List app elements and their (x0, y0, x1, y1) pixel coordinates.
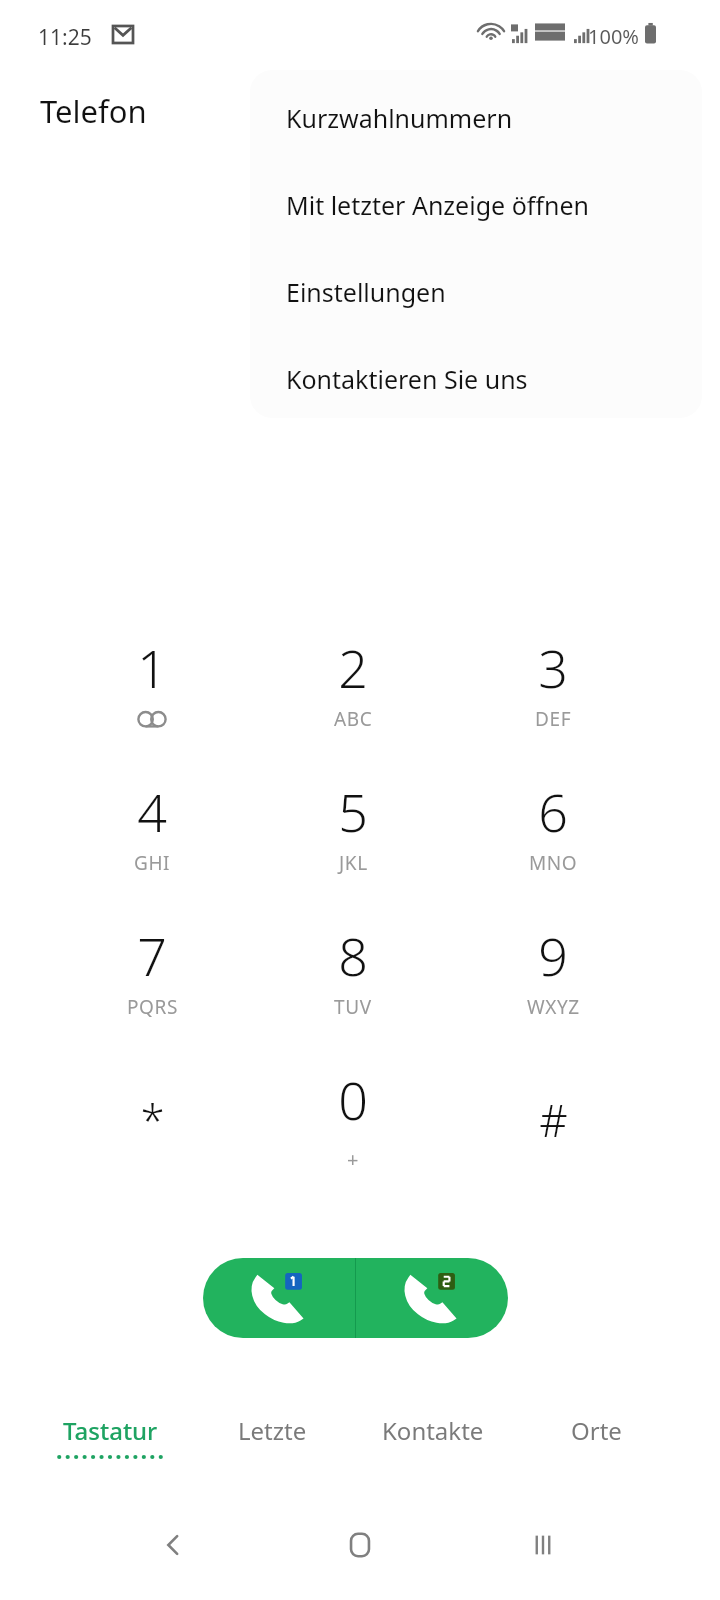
staticText: 9 (538, 920, 568, 991)
staticText: Einstellungen (286, 275, 446, 309)
staticText: # (539, 1090, 568, 1150)
button[interactable]: 8 (278, 910, 428, 1054)
button[interactable]: Tastatur (20, 1398, 200, 1476)
button[interactable]: Letzte Apps (490, 1500, 596, 1590)
staticText: 5 (338, 776, 368, 847)
button[interactable]: Orte (506, 1398, 686, 1476)
button[interactable]: 9 (478, 910, 628, 1054)
staticText: MNO (529, 850, 578, 876)
button[interactable]: Kontakte (343, 1398, 523, 1476)
button[interactable]: Anrufen SIM 1 (203, 1258, 355, 1338)
staticText: 2 (338, 632, 368, 703)
staticText: 1 (137, 632, 167, 703)
staticText: 7 (137, 920, 167, 991)
button[interactable]: # (478, 1054, 628, 1198)
staticText: + (347, 1146, 360, 1173)
button[interactable]: 7 (77, 910, 227, 1054)
staticText: Kontaktieren Sie uns (286, 362, 528, 396)
staticText: * (140, 1090, 165, 1150)
staticText: Telefon (40, 90, 147, 132)
staticText: PQRS (127, 994, 178, 1020)
button[interactable]: 2 (278, 622, 428, 766)
staticText: TUV (334, 994, 372, 1020)
button[interactable]: Kontaktieren Sie uns (250, 339, 702, 418)
staticText: 0 (338, 1064, 368, 1135)
button[interactable]: Mit letzter Anzeige öffnen (250, 165, 702, 245)
staticText: 100% (588, 23, 639, 50)
button[interactable]: Startbildschirm (307, 1500, 413, 1590)
button[interactable]: 1 (77, 622, 227, 766)
button[interactable]: 6 (478, 766, 628, 910)
staticText: Tastatur (63, 1414, 158, 1447)
staticText: 6 (538, 776, 568, 847)
staticText: Kurzwahlnummern (286, 101, 513, 135)
button[interactable]: 5 (278, 766, 428, 910)
button[interactable]: Kurzwahlnummern (250, 78, 702, 158)
staticText: Letzte (238, 1414, 307, 1447)
button[interactable]: Anrufen SIM 2 (356, 1258, 508, 1338)
staticText: Kontakte (382, 1414, 484, 1447)
button[interactable]: * (77, 1054, 227, 1198)
button[interactable]: Letzte (182, 1398, 362, 1476)
staticText: ABC (334, 706, 373, 732)
staticText: Orte (571, 1414, 622, 1447)
staticText: 8 (338, 920, 368, 991)
staticText: 3 (538, 632, 568, 703)
staticText: GHI (134, 850, 171, 876)
staticText: Mit letzter Anzeige öffnen (286, 188, 589, 222)
staticText: WXYZ (527, 994, 580, 1020)
button[interactable]: Einstellungen (250, 252, 702, 332)
button[interactable]: Zurück (120, 1500, 226, 1590)
staticText: 4 (137, 776, 167, 847)
button[interactable]: 3 (478, 622, 628, 766)
staticText: DEF (535, 706, 572, 732)
button[interactable]: 0 (278, 1054, 428, 1198)
staticText: JKL (339, 850, 368, 876)
staticText: 11:25 (38, 23, 92, 52)
button[interactable]: 4 (77, 766, 227, 910)
